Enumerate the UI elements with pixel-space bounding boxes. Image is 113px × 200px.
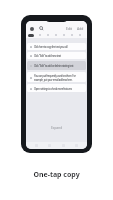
button[interactable]: Tab bbox=[60, 142, 67, 149]
button[interactable]: Click "Edit" to add or delete existing t… bbox=[27, 61, 86, 70]
staticText: Click "Edit" to add or delete existing t… bbox=[34, 64, 74, 67]
button[interactable]: Add bbox=[76, 25, 85, 32]
button[interactable]: Click here to copy the text you call bbox=[27, 43, 86, 50]
staticText: Edit bbox=[66, 26, 73, 31]
button[interactable]: Expand bbox=[50, 125, 64, 131]
button[interactable]: Menu bbox=[28, 25, 35, 32]
staticText: You can put frequently used text here. F… bbox=[34, 74, 76, 77]
button[interactable]: Search bbox=[38, 25, 45, 32]
button[interactable]: Tab bbox=[73, 142, 80, 149]
button[interactable]: Edit bbox=[65, 25, 74, 32]
staticText: Open settings to check more features bbox=[34, 87, 72, 90]
button[interactable]: You can put frequently used text here. F… bbox=[27, 72, 86, 82]
staticText: Click here to copy the text you call bbox=[34, 45, 68, 48]
staticText: One-tap copy bbox=[33, 170, 80, 180]
button[interactable]: Tab bbox=[46, 142, 53, 149]
staticText: Expand bbox=[51, 126, 63, 130]
button[interactable]: Tab bbox=[33, 142, 40, 149]
staticText: Add bbox=[77, 26, 84, 31]
button[interactable]: All bbox=[28, 34, 34, 37]
staticText: Click "Edit" to add new text bbox=[34, 54, 61, 57]
button[interactable]: Open settings to check more features bbox=[27, 84, 86, 92]
button[interactable]: Click "Edit" to add new text bbox=[27, 52, 86, 59]
staticText: example, put your email address here. bbox=[34, 78, 73, 81]
